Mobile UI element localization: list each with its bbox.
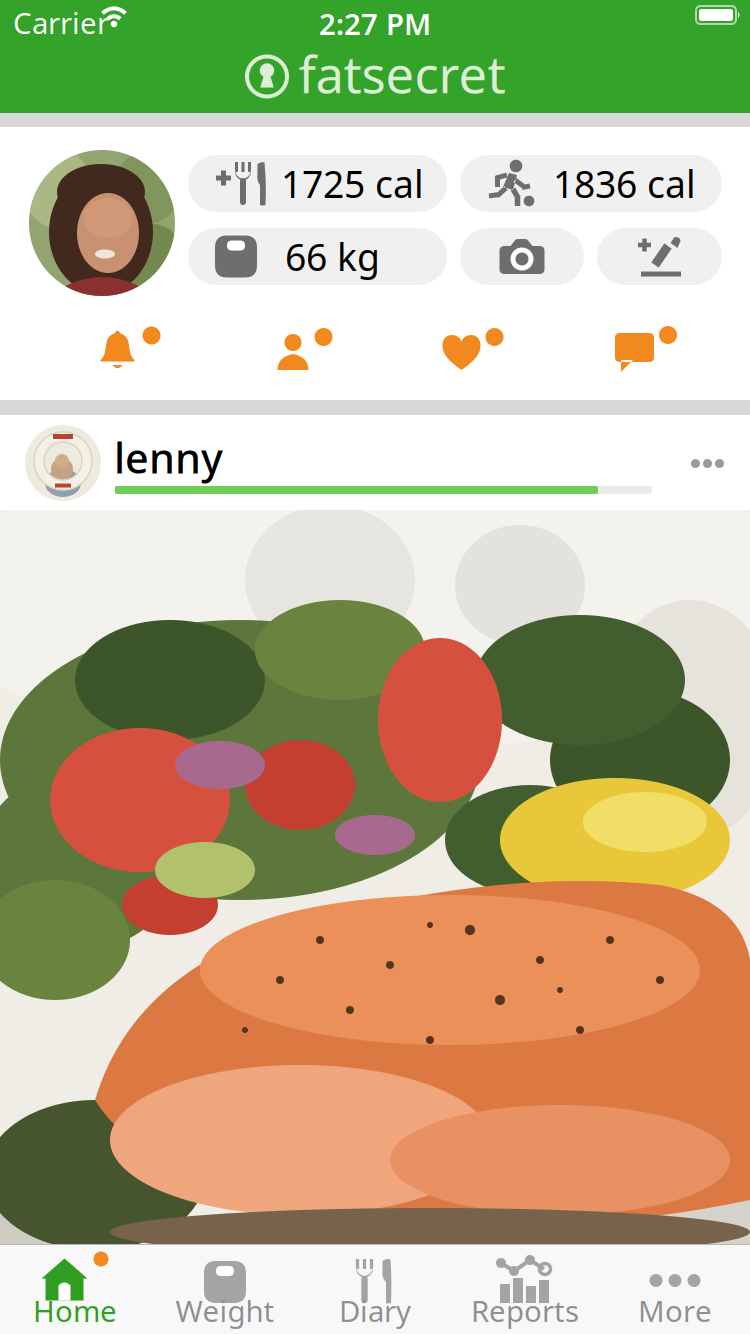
- button[interactable]: Reports: [450, 1246, 600, 1332]
- button[interactable]: Weight: [150, 1246, 300, 1332]
- staticText: 1725 cal: [281, 159, 424, 208]
- button[interactable]: Supports: [441, 325, 505, 373]
- button[interactable]: Notifications: [98, 325, 162, 373]
- button[interactable]: Followers: [273, 325, 337, 373]
- staticText: More: [638, 1291, 712, 1330]
- staticText: fatsecret: [298, 40, 505, 107]
- button[interactable]: More: [600, 1246, 750, 1332]
- button[interactable]: Diary: [300, 1246, 450, 1332]
- button[interactable]: Home: [0, 1246, 150, 1332]
- staticText: Home: [33, 1291, 117, 1330]
- button[interactable]: Take photo: [460, 228, 584, 285]
- staticText: Diary: [339, 1291, 411, 1330]
- staticText: 1836 cal: [553, 159, 696, 208]
- button[interactable]: lenny: [0, 415, 750, 510]
- staticText: lenny: [114, 430, 223, 485]
- staticText: 2:27 PM: [319, 4, 431, 43]
- button[interactable]: 1836 cal: [460, 155, 722, 212]
- staticText: Weight: [175, 1291, 274, 1330]
- staticText: Carrier: [13, 3, 109, 42]
- button[interactable]: 1725 cal: [188, 155, 447, 212]
- staticText: 66 kg: [285, 232, 380, 281]
- staticText: Reports: [471, 1291, 579, 1330]
- button[interactable]: Create post: [597, 228, 722, 285]
- button[interactable]: 66 kg: [188, 228, 447, 285]
- button[interactable]: Comments: [614, 325, 678, 373]
